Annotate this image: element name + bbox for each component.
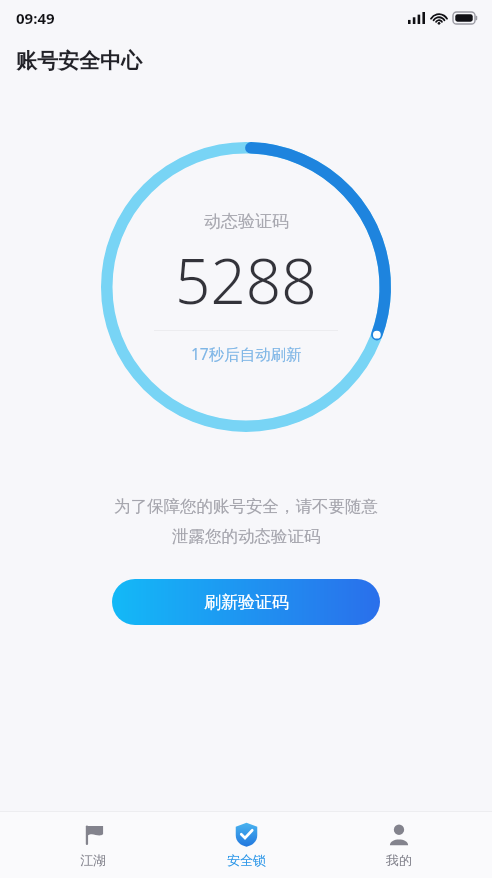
staticText: 账号安全中心 — [16, 48, 142, 74]
other: 我的 — [387, 823, 411, 847]
staticText: 江湖 — [80, 852, 106, 868]
other: 安全锁 — [234, 822, 259, 847]
button[interactable]: 我的 — [339, 817, 459, 874]
staticText: 泄露您的动态验证码 — [172, 526, 321, 547]
button[interactable]: 安全锁 — [186, 816, 306, 874]
staticText: 动态验证码 — [204, 211, 289, 232]
staticText: 为了保障您的账号安全，请不要随意 — [114, 496, 378, 517]
other: 江湖 — [81, 823, 105, 847]
staticText: 09:49 — [16, 8, 55, 28]
button[interactable]: 江湖 — [33, 817, 153, 874]
staticText: 我的 — [386, 852, 412, 868]
button[interactable]: 刷新验证码 — [112, 579, 380, 625]
staticText: 17秒后自动刷新 — [191, 343, 302, 364]
staticText: 5288 — [175, 238, 317, 322]
staticText: 安全锁 — [227, 852, 266, 868]
staticText: 刷新验证码 — [204, 592, 289, 613]
